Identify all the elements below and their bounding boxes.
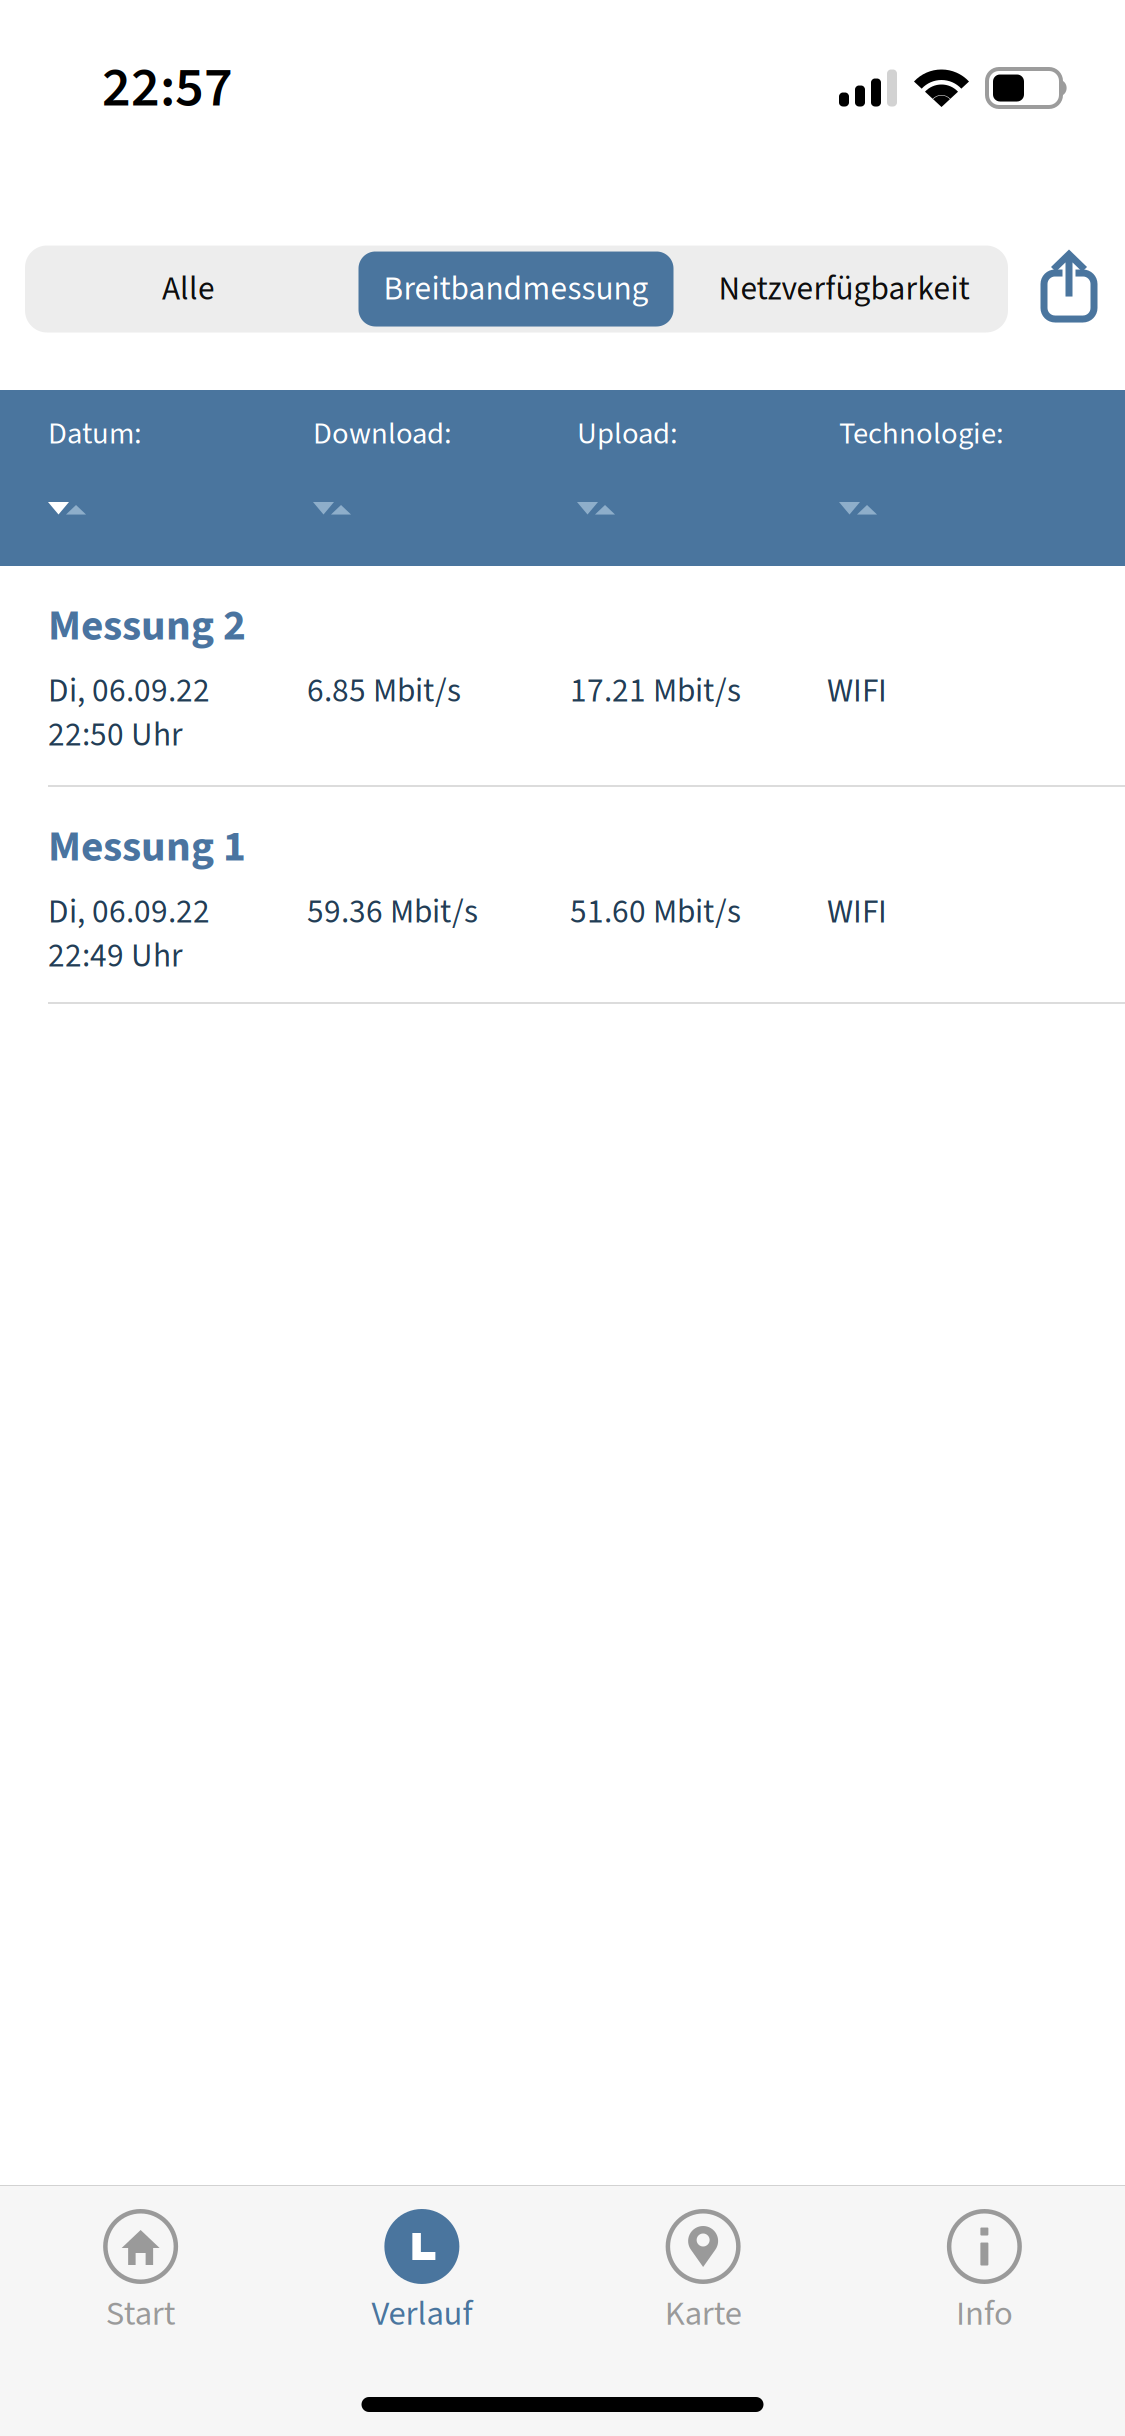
button[interactable]: Alle [25,245,352,332]
staticText: 22:50 Uhr [48,711,183,759]
button[interactable]: Datum: [48,390,313,566]
button[interactable]: Start [0,2186,281,2346]
staticText: 22:49 Uhr [48,932,183,980]
staticText: Datum: [48,412,142,456]
staticText: Di, 06.09.22 [48,888,210,936]
staticText: Breitbandmessung [383,265,648,313]
staticText: Messung 1 [48,816,246,878]
staticText: WIFI [827,888,887,936]
button[interactable]: Messung 2 [0,566,1125,787]
staticText: 17.21 Mbit/s [570,667,741,715]
staticText: Netzverfügbarkeit [718,265,969,313]
button[interactable]: Teilen [1029,240,1109,338]
button[interactable]: Breitbandmessung [352,245,680,332]
staticText: Start [106,2289,176,2339]
staticText: 59.36 Mbit/s [307,888,478,936]
staticText: 6.85 Mbit/s [307,667,461,715]
button[interactable]: Messung 1 [0,787,1125,1004]
staticText: 51.60 Mbit/s [570,888,741,936]
button[interactable]: Info [844,2186,1125,2346]
button[interactable]: Download: [313,390,577,566]
button[interactable]: Technologie: [839,390,1089,566]
staticText: WIFI [827,667,887,715]
staticText: Alle [162,265,215,313]
staticText: Info [956,2289,1013,2339]
button[interactable]: Upload: [577,390,839,566]
staticText: Karte [665,2289,742,2339]
staticText: Download: [313,412,452,456]
staticText: 22:57 [102,48,233,128]
button[interactable]: Karte [562,2186,844,2346]
button[interactable]: Netzverfügbarkeit [680,245,1008,332]
button[interactable]: Verlauf [281,2186,562,2346]
staticText: Di, 06.09.22 [48,667,210,715]
staticText: Technologie: [839,412,1004,456]
staticText: Verlauf [371,2289,472,2339]
staticText: Messung 2 [48,595,246,657]
staticText: Upload: [577,412,678,456]
